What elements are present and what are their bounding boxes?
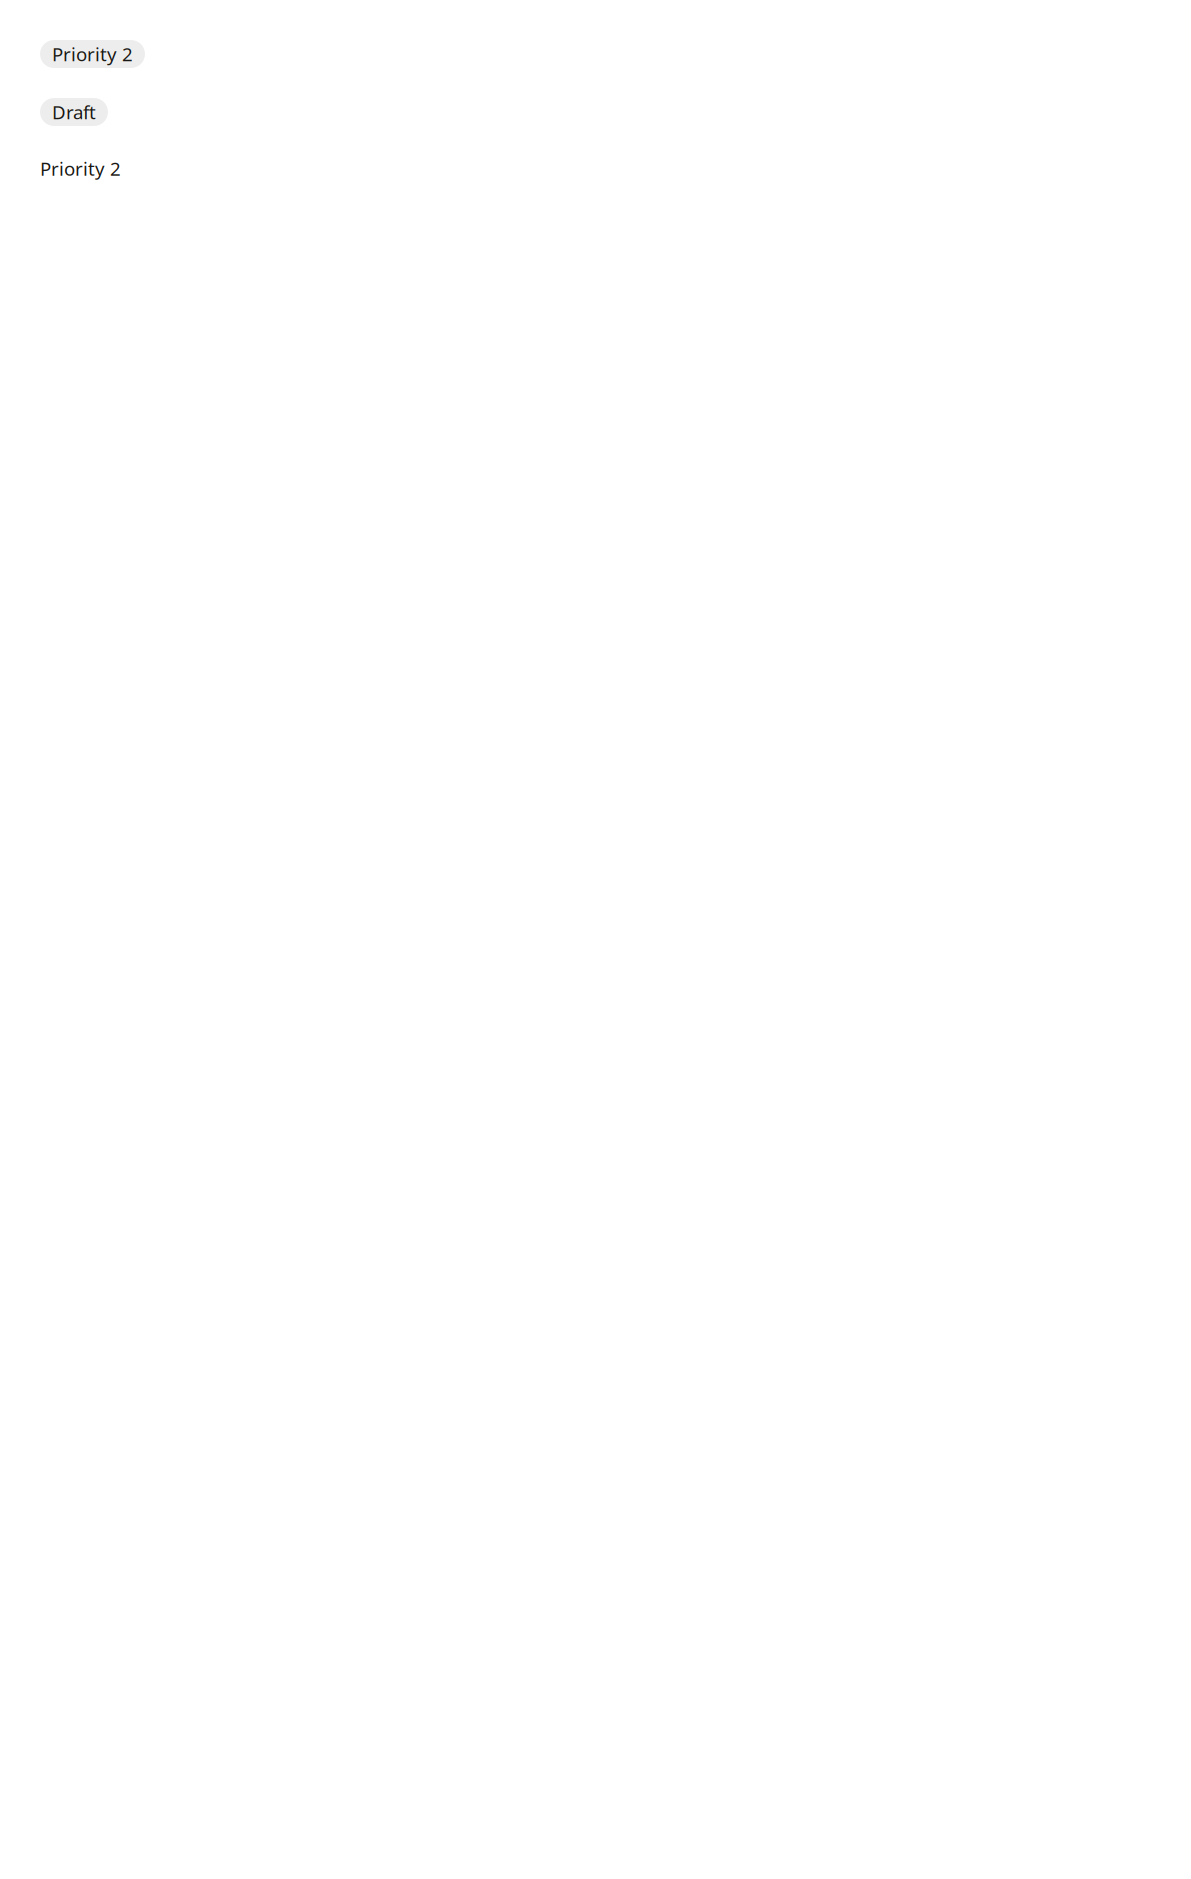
staticText: Priority 2 [52,42,133,66]
staticText: Draft [52,100,96,124]
staticText: Priority 2 [40,156,121,181]
